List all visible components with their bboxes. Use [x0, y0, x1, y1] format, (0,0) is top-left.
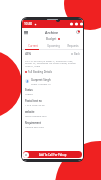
staticText: Handle with care [25, 125, 44, 128]
staticText: Requests [67, 44, 79, 48]
button[interactable]: Requests [63, 42, 83, 50]
button[interactable]: Full Booking Details [25, 70, 80, 74]
staticText: Gurpreet Singh [31, 78, 51, 82]
staticText: https://google.com [25, 114, 47, 117]
staticText: 43% [25, 52, 32, 56]
staticText: Postal text no [25, 99, 42, 102]
button[interactable]: Back [71, 52, 80, 56]
staticText: Upcoming [47, 44, 60, 48]
button[interactable]: Add To Call For Pickup [23, 151, 82, 158]
staticText: Order Number 01 [31, 82, 51, 85]
staticText: Back [74, 52, 80, 56]
button[interactable]: Notifications [75, 29, 81, 35]
staticText: Full Booking Details [28, 70, 53, 74]
staticText: Requirement [25, 121, 41, 124]
staticText: + 918 7400145 65 [25, 103, 45, 106]
button[interactable]: Upcoming [43, 42, 63, 50]
button[interactable]: Requirement [22, 119, 83, 130]
staticText: Current [28, 44, 38, 48]
staticText: c/o 131-65 floor, B tower-A, Industrial … [25, 59, 80, 68]
button[interactable]: Back [23, 152, 29, 158]
staticText: Archive [45, 30, 59, 35]
staticText: Budget [46, 37, 57, 41]
staticText: Urgent [25, 92, 33, 95]
button[interactable]: Gurpreet Singh [22, 76, 83, 86]
staticText: website [25, 110, 35, 113]
button[interactable]: Current [22, 42, 43, 50]
staticText: Status [25, 88, 33, 91]
button[interactable]: Postal text no [22, 97, 83, 108]
button[interactable]: Status [22, 86, 83, 97]
button[interactable]: Menu [24, 29, 30, 35]
staticText: Add To Call For Pickup [39, 153, 67, 157]
button[interactable]: website [22, 108, 83, 119]
staticText: 10:30 [24, 22, 33, 26]
